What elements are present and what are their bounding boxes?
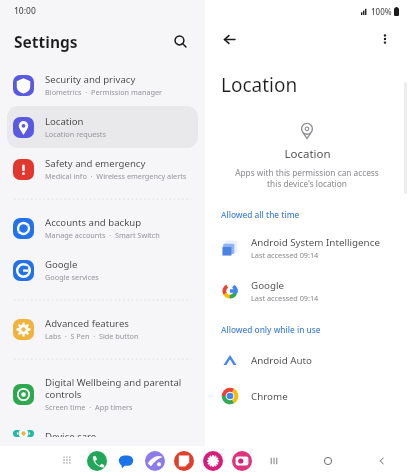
button[interactable]: Accounts and backup (7, 207, 198, 249)
button[interactable]: Safety and emergency (7, 148, 198, 190)
button[interactable]: More options (374, 28, 396, 50)
button[interactable]: Notes (174, 451, 194, 471)
button[interactable]: Google (205, 272, 409, 310)
staticText: Manage accounts · Smart Switch (45, 230, 160, 240)
button[interactable]: Google (7, 249, 198, 291)
button[interactable]: Apps (58, 451, 78, 471)
staticText: Labs · S Pen · Side button (45, 331, 139, 341)
staticText: Google (45, 258, 78, 271)
button[interactable]: Back (369, 448, 395, 474)
staticText: Security and privacy (45, 73, 136, 86)
staticText: Settings (14, 31, 169, 52)
button[interactable]: Advanced features (7, 308, 198, 350)
staticText: Last accessed 09:14 (251, 293, 319, 303)
staticText: 100% (371, 6, 392, 17)
button[interactable]: Search (169, 30, 191, 52)
staticText: Screen time · App timers (45, 402, 133, 412)
button[interactable]: Android Auto (205, 344, 409, 376)
staticText: Safety and emergency (45, 157, 146, 170)
button[interactable]: Chrome (205, 380, 409, 412)
staticText: Biometrics · Permission manager (45, 87, 163, 97)
staticText: Android System Intelligence (251, 236, 380, 249)
staticText: Location (221, 72, 298, 98)
staticText: Location (284, 146, 331, 162)
staticText: Location (45, 115, 84, 128)
staticText: Allowed only while in use (221, 324, 321, 335)
button[interactable]: Messages (116, 451, 136, 471)
staticText: Apps with this permission can access thi… (235, 167, 379, 189)
button[interactable]: Phone (87, 451, 107, 471)
staticText: Last accessed 09:14 (251, 250, 319, 260)
button[interactable]: Digital Wellbeing and parental controls (7, 367, 198, 421)
staticText: Device care (45, 430, 97, 437)
staticText: Location requests (45, 129, 106, 139)
staticText: Allowed all the time (221, 209, 300, 220)
staticText: Medical info · Wireless emergency alerts (45, 171, 187, 181)
button[interactable]: Internet (145, 451, 165, 471)
staticText: Android Auto (251, 354, 312, 367)
button[interactable]: Android System Intelligence (205, 229, 409, 267)
staticText: Accounts and backup (45, 216, 142, 229)
button[interactable]: Camera (232, 451, 252, 471)
staticText: Google services (45, 272, 99, 282)
staticText: Google (251, 279, 285, 292)
button[interactable]: Back (218, 28, 240, 50)
button[interactable]: Device care (7, 421, 198, 446)
button[interactable]: Gallery (203, 451, 223, 471)
staticText: 10:00 (14, 5, 36, 17)
staticText: Digital Wellbeing and parental controls (45, 376, 182, 401)
button[interactable]: Recents (261, 448, 287, 474)
button[interactable]: Location (7, 106, 198, 148)
staticText: Chrome (251, 390, 288, 403)
button[interactable]: Home (315, 448, 341, 474)
staticText: Advanced features (45, 317, 129, 330)
button[interactable]: Security and privacy (7, 64, 198, 106)
